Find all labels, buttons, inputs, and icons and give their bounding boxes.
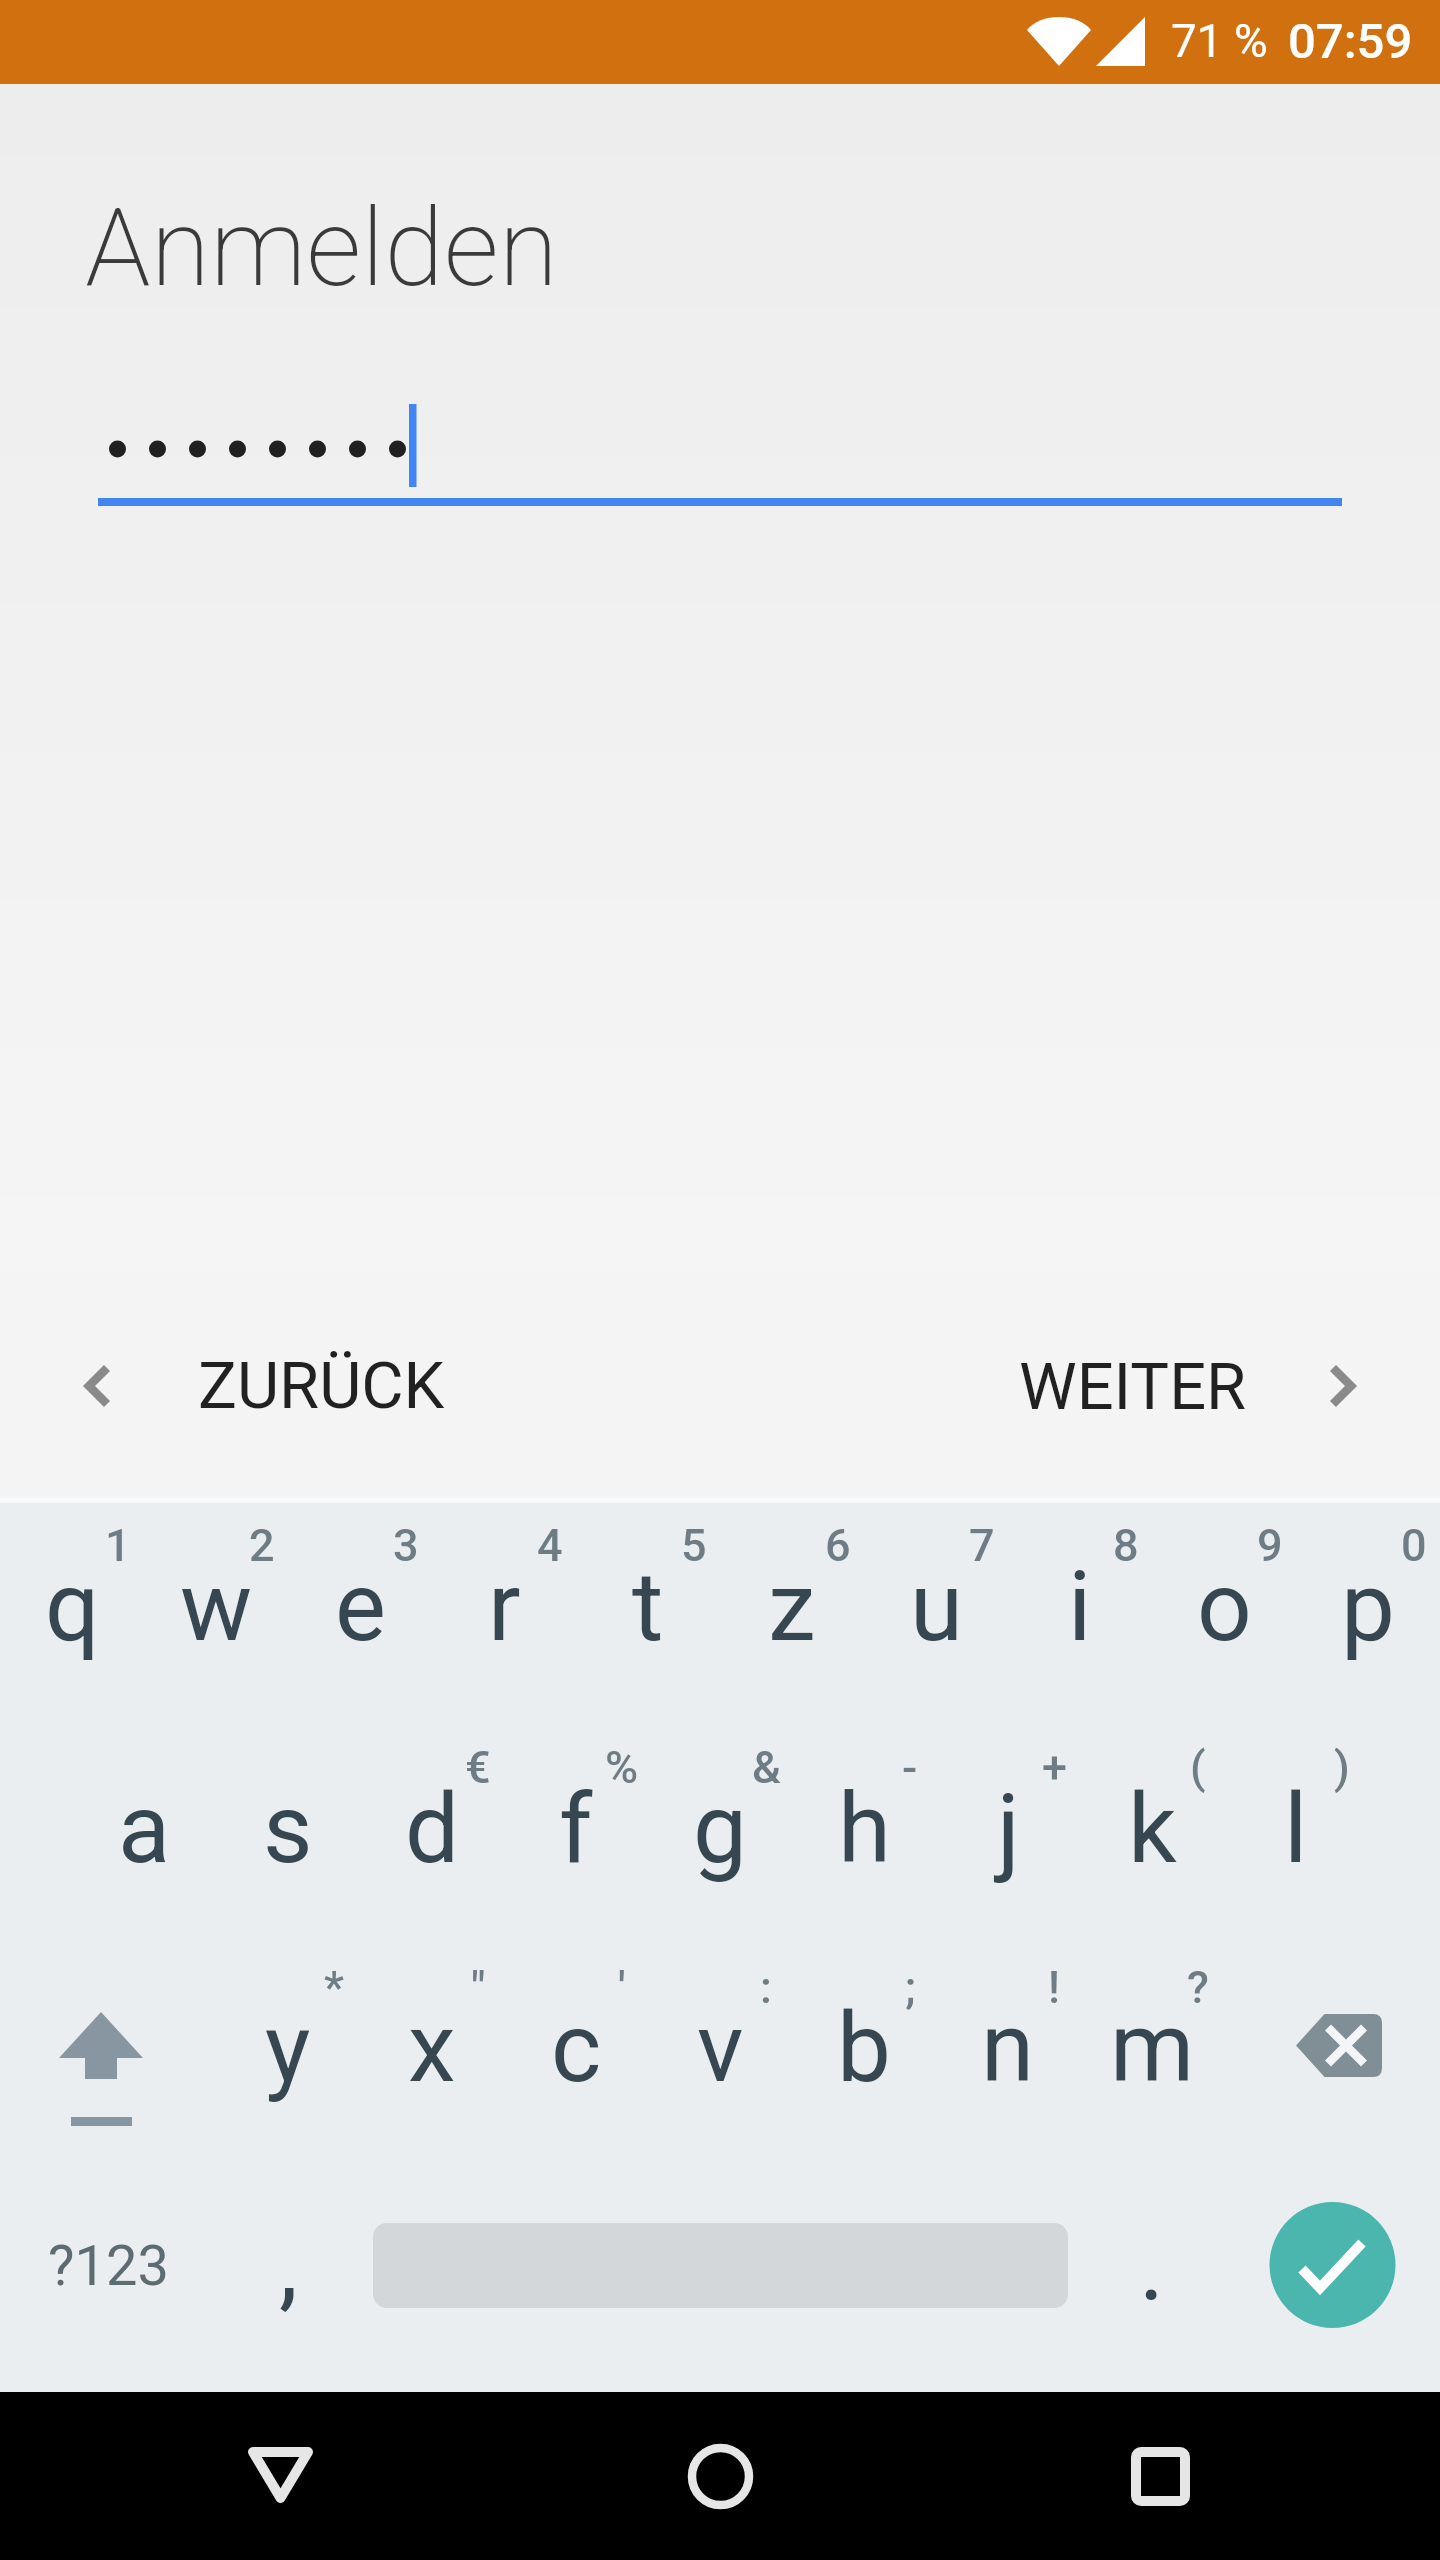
staticText: & [752,1741,781,1794]
staticText: ZURÜCK [198,1348,445,1424]
button[interactable]: : [648,1947,792,2169]
staticText: s [263,1773,313,1886]
staticText: % [605,1741,639,1794]
button[interactable]: % [504,1725,648,1947]
button[interactable]: ( [1080,1725,1224,1947]
button[interactable]: + [936,1725,1080,1947]
staticText: * [324,1961,344,2014]
staticText: ! [1048,1961,1060,2014]
staticText: h [838,1773,891,1886]
staticText: n [981,1992,1035,2105]
staticText: k [1128,1773,1177,1886]
staticText: a [118,1773,171,1886]
button[interactable]: Shift [0,1947,216,2169]
button[interactable]: - [792,1725,936,1947]
staticText: 3 [393,1519,419,1572]
staticText: m [1110,1992,1195,2105]
staticText: y [265,1992,311,2105]
staticText: g [693,1773,747,1886]
staticText: j [997,1773,1020,1886]
button[interactable]: WEITER [720,1272,1440,1498]
button[interactable]: Enter [1224,2169,1440,2392]
staticText: , [279,2209,298,2322]
button[interactable]: 9 [1152,1503,1296,1725]
staticText: r [488,1551,521,1664]
staticText: WEITER [1019,1349,1247,1425]
button[interactable]: ) [1224,1725,1368,1947]
button[interactable]: ZURÜCK [0,1272,720,1498]
staticText: 9 [1257,1519,1283,1572]
staticText: t [632,1551,664,1664]
button[interactable]: ! [936,1947,1080,2169]
staticText: ?123 [48,2233,169,2299]
button[interactable]: * [216,1947,360,2169]
staticText: : [760,1961,772,2014]
staticText: 8 [1113,1519,1139,1572]
staticText: ? [1187,1961,1209,2014]
button[interactable]: Back [200,2392,360,2560]
button[interactable]: s [216,1725,360,1947]
staticText: q [45,1551,100,1664]
staticText: l [1284,1773,1308,1886]
staticText: Anmelden [85,185,559,312]
staticText: 6 [825,1519,851,1572]
button[interactable]: & [648,1725,792,1947]
staticText: f [559,1773,593,1886]
staticText: u [910,1551,963,1664]
button[interactable]: Recent apps [1080,2392,1240,2560]
button[interactable]: 5 [576,1503,720,1725]
button[interactable]: ? [1080,1947,1224,2169]
button[interactable]: Space [360,2169,1080,2392]
button[interactable]: 7 [864,1503,1008,1725]
button[interactable]: € [360,1725,504,1947]
staticText: 5 [681,1519,707,1572]
button[interactable]: 8 [1008,1503,1152,1725]
staticText: 2 [249,1519,275,1572]
button[interactable]: , [216,2169,360,2392]
staticText: 4 [537,1519,563,1572]
staticText: ; [905,1961,916,2014]
staticText: e [335,1551,386,1664]
staticText: x [408,1992,456,2105]
staticText: z [768,1551,816,1664]
button[interactable]: ; [792,1947,936,2169]
button[interactable]: Home [640,2392,800,2560]
button[interactable]: ?123 [0,2169,216,2392]
button[interactable]: 3 [288,1503,432,1725]
staticText: p [1341,1551,1395,1664]
staticText: ) [1334,1741,1350,1794]
staticText: 07:59 [1288,13,1413,70]
button[interactable]: 1 [0,1503,144,1725]
staticText: 7 [969,1519,995,1572]
staticText: b [837,1992,891,2105]
button[interactable]: Backspace [1224,1947,1440,2169]
staticText: € [465,1741,491,1794]
button[interactable]: 2 [144,1503,288,1725]
staticText: 71 % [1171,14,1268,68]
button[interactable]: 6 [720,1503,864,1725]
staticText: ' [618,1961,626,2014]
staticText: c [551,1992,602,2105]
button[interactable]: a [72,1725,216,1947]
staticText: w [180,1551,253,1664]
staticText: . [1139,2210,1165,2323]
staticText: ( [1190,1741,1206,1794]
staticText: 0 [1401,1519,1427,1572]
button[interactable]: 0 [1296,1503,1440,1725]
staticText: d [405,1773,460,1886]
staticText: v [697,1992,744,2105]
button[interactable]: . [1080,2169,1224,2392]
staticText: i [1068,1551,1092,1664]
button[interactable]: ' [504,1947,648,2169]
staticText: + [1042,1741,1067,1794]
button[interactable]: " [360,1947,504,2169]
staticText: o [1197,1551,1252,1664]
staticText: " [471,1961,486,2014]
button[interactable]: 4 [432,1503,576,1725]
staticText: 1 [105,1519,131,1572]
staticText: - [902,1741,918,1794]
